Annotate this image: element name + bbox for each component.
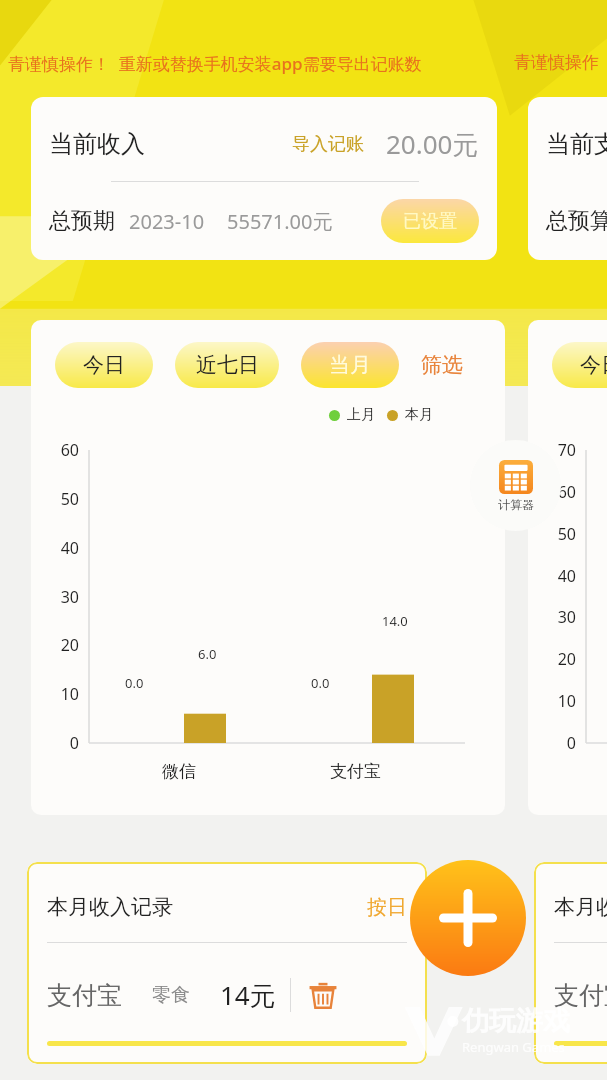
staticText: 60 (39, 439, 79, 461)
staticText: 本月收入记录 (47, 894, 173, 920)
staticText: 零食 (152, 983, 190, 1007)
button[interactable]: 当月 (301, 342, 399, 388)
staticText: 总预期 (49, 207, 115, 235)
staticText: 本月 (405, 406, 433, 424)
button[interactable]: 当前收入 (31, 97, 497, 260)
staticText: 40 (536, 565, 576, 587)
staticText: Rengwan Games (462, 1038, 565, 1056)
staticText: 0 (39, 732, 79, 754)
staticText: 支付宝 (330, 761, 381, 782)
staticText: 总预算 (546, 207, 607, 235)
staticText: 40 (39, 537, 79, 559)
button[interactable]: 本月收入记录 (27, 862, 427, 1064)
button[interactable]: 筛选 (421, 352, 463, 378)
staticText: 微信 (162, 761, 196, 782)
staticText: 今日 (83, 352, 125, 378)
button[interactable]: 按日 (367, 895, 407, 920)
staticText: 30 (39, 586, 79, 608)
staticText: 20 (39, 634, 79, 656)
staticText: 上月 (347, 406, 375, 424)
button[interactable]: 删除 (307, 979, 339, 1011)
button[interactable]: 计算器 (470, 440, 561, 531)
staticText: 近七日 (196, 352, 259, 378)
staticText: 60 (536, 481, 576, 503)
staticText: 今日 (580, 352, 607, 378)
staticText: 本月收入记录 (554, 894, 607, 920)
button[interactable]: 当前支 (528, 97, 607, 260)
staticText: 14元 (220, 977, 276, 1013)
staticText: 支付宝 (47, 980, 122, 1011)
button[interactable]: 今日 (552, 342, 607, 388)
staticText: 10 (536, 690, 576, 712)
staticText: 青谨慎操作 (514, 52, 599, 73)
staticText: 10 (39, 683, 79, 705)
button[interactable]: 添加记账 (410, 860, 526, 976)
staticText: 青谨慎操作！ 重新或替换手机安装app需要导出记账数 (8, 52, 422, 75)
staticText: 仂玩游戏 (462, 1004, 570, 1038)
staticText: 0 (536, 732, 576, 754)
staticText: 30 (536, 606, 576, 628)
staticText: 50 (536, 523, 576, 545)
staticText: 计算器 (498, 497, 534, 512)
staticText: 55571.00元 (227, 208, 333, 235)
staticText: 已设置 (403, 210, 457, 233)
button[interactable]: 近七日 (175, 342, 279, 388)
staticText: 70 (536, 439, 576, 461)
staticText: 支付宝 (554, 980, 607, 1011)
button[interactable]: 本月收入记录 (534, 862, 607, 1064)
button[interactable]: 今日 (55, 342, 153, 388)
staticText: 6.0 (198, 645, 217, 663)
staticText: 0.0 (311, 674, 330, 692)
button[interactable]: 导入记账 (292, 133, 364, 156)
staticText: 当月 (329, 352, 371, 378)
staticText: 2023-10 (129, 208, 205, 235)
staticText: 当前收入 (49, 129, 145, 159)
staticText: 20 (536, 648, 576, 670)
staticText: 20.00元 (386, 126, 479, 162)
staticText: 50 (39, 488, 79, 510)
staticText: 0.0 (125, 674, 144, 692)
staticText: 14.0 (382, 612, 408, 630)
button[interactable]: 已设置 (381, 199, 479, 243)
staticText: 当前支 (546, 129, 607, 159)
